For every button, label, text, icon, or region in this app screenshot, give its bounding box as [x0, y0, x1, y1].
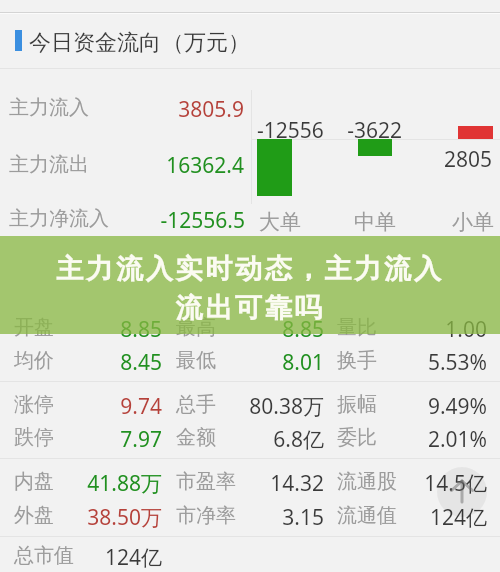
staticText: 14.5亿 [377, 469, 487, 498]
staticText: 2.01% [377, 425, 487, 454]
staticText: 7.97 [52, 425, 162, 454]
staticText: 委比 [337, 425, 377, 450]
staticText: 2805 [392, 145, 492, 174]
button[interactable]: 开盘 [0, 309, 500, 343]
staticText: 主力流出 [9, 152, 89, 177]
staticText: 总手 [176, 392, 216, 417]
staticText: 1.00 [377, 315, 487, 344]
staticText: -3622 [302, 116, 402, 145]
staticText: 涨停 [14, 392, 54, 417]
button[interactable]: 总市值 [0, 537, 500, 571]
staticText: 振幅 [337, 392, 377, 417]
button[interactable]: 跌停 [0, 419, 500, 453]
staticText: 3.15 [214, 503, 324, 532]
button[interactable]: 涨停 [0, 386, 500, 420]
button[interactable]: 内盘 [0, 463, 500, 497]
staticText: 5.53% [377, 348, 487, 377]
staticText: 流通股 [337, 469, 397, 494]
staticText: 80.38万 [214, 392, 324, 421]
staticText: 8.85 [214, 315, 324, 344]
staticText: （万元） [162, 29, 250, 57]
staticText: 38.50万 [52, 503, 162, 532]
button[interactable]: Scroll to top [437, 467, 487, 517]
staticText: 外盘 [14, 503, 54, 528]
staticText: 内盘 [14, 469, 54, 494]
staticText: 量比 [337, 315, 377, 340]
staticText: 3805.9 [94, 95, 244, 124]
staticText: 14.32 [214, 469, 324, 498]
button[interactable]: 均价 [0, 342, 500, 376]
staticText: 9.49% [377, 392, 487, 421]
staticText: 6.8亿 [214, 425, 324, 454]
staticText: 流通值 [337, 503, 397, 528]
button[interactable]: 今日资金流向 [0, 12, 500, 68]
staticText: -12556.5 [95, 206, 245, 235]
staticText: 总市值 [14, 543, 74, 568]
staticText: 均价 [14, 348, 54, 373]
staticText: 主力流入 [9, 95, 89, 120]
staticText: 流出可靠吗 [0, 291, 500, 325]
staticText: 9.74 [52, 392, 162, 421]
staticText: 主力净流入 [9, 206, 109, 231]
staticText: 124亿 [52, 543, 162, 572]
staticText: 主力流入实时动态，主力流入 [0, 252, 500, 286]
staticText: 124亿 [377, 503, 487, 532]
staticText: 跌停 [14, 425, 54, 450]
staticText: 8.01 [214, 348, 324, 377]
staticText: -12556 [257, 116, 324, 145]
staticText: 中单 [354, 209, 396, 235]
staticText: 最低 [176, 348, 216, 373]
staticText: 最高 [176, 315, 216, 340]
staticText: 小单 [452, 209, 494, 235]
button[interactable]: 主力流入实时动态，主力流入 [0, 236, 500, 334]
staticText: 市盈率 [176, 469, 236, 494]
staticText: 8.85 [52, 315, 162, 344]
staticText: 41.88万 [52, 469, 162, 498]
button[interactable]: 外盘 [0, 497, 500, 531]
staticText: 今日资金流向 [29, 29, 161, 57]
staticText: 大单 [259, 209, 301, 235]
staticText: 开盘 [14, 315, 54, 340]
staticText: 8.45 [52, 348, 162, 377]
staticText: 16362.4 [94, 151, 244, 180]
staticText: 换手 [337, 348, 377, 373]
staticText: 金额 [176, 425, 216, 450]
staticText: 市净率 [176, 503, 236, 528]
